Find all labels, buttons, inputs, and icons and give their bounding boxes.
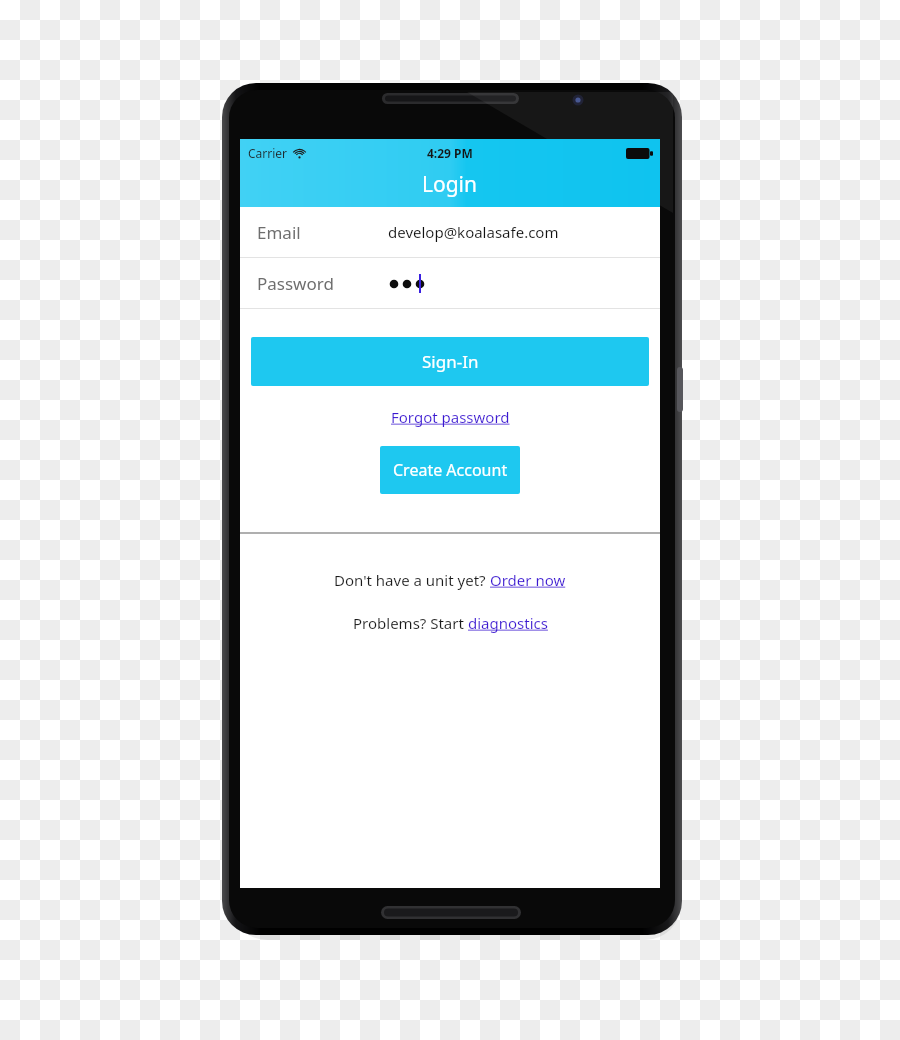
staticText: 4:29 PM	[427, 145, 473, 161]
staticText: diagnostics	[468, 613, 548, 633]
staticText: Sign-In	[422, 350, 479, 373]
button[interactable]: Password	[240, 258, 660, 308]
staticText: Email	[257, 221, 301, 244]
staticText: Order now	[490, 570, 566, 590]
button[interactable]: Email	[240, 207, 660, 257]
staticText: Password	[257, 272, 334, 295]
button[interactable]: Create Account	[380, 446, 520, 494]
button[interactable]: Order now	[490, 570, 566, 590]
staticText: Login	[422, 170, 478, 199]
staticText: Don't have a unit yet?	[334, 570, 490, 590]
staticText: Problems? Start	[353, 613, 468, 633]
button[interactable]: Forgot password	[387, 405, 514, 429]
staticText: develop@koalasafe.com	[388, 222, 559, 242]
staticText: Forgot password	[391, 407, 510, 427]
staticText: Create Account	[393, 459, 508, 481]
button[interactable]: Sign-In	[251, 337, 649, 386]
staticText: Carrier	[248, 145, 288, 161]
button[interactable]: diagnostics	[468, 613, 548, 633]
